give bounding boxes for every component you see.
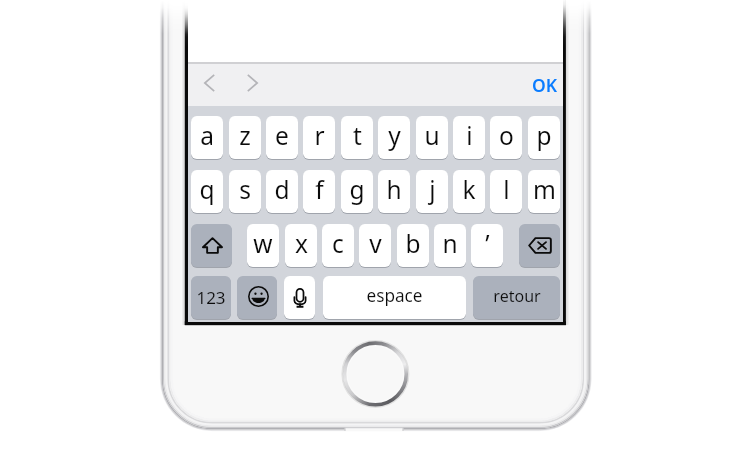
button[interactable]: z — [229, 116, 261, 159]
staticText: t — [353, 119, 362, 152]
button[interactable]: h — [378, 170, 410, 213]
staticText: g — [349, 173, 365, 206]
button[interactable]: r — [303, 116, 335, 159]
staticText: u — [424, 119, 440, 152]
staticText: j — [429, 173, 436, 206]
staticText: i — [466, 119, 473, 152]
staticText: m — [533, 173, 556, 206]
staticText: o — [499, 119, 514, 152]
staticText: e — [275, 119, 289, 152]
button[interactable]: Previous field — [193, 64, 225, 106]
button[interactable]: y — [378, 116, 410, 159]
button[interactable]: t — [341, 116, 373, 159]
button[interactable]: u — [416, 116, 448, 159]
staticText: a — [200, 119, 214, 152]
button[interactable]: v — [359, 224, 391, 267]
button[interactable]: espace — [323, 276, 466, 319]
button[interactable]: g — [341, 170, 373, 213]
staticText: s — [239, 173, 251, 206]
staticText: l — [503, 173, 510, 206]
button[interactable]: 123 — [191, 276, 231, 319]
staticText: r — [314, 119, 325, 152]
button[interactable]: d — [266, 170, 298, 213]
button[interactable]: OK — [532, 64, 558, 106]
button[interactable]: p — [528, 116, 560, 159]
button[interactable]: j — [416, 170, 448, 213]
staticText: k — [462, 173, 476, 206]
button[interactable]: k — [453, 170, 485, 213]
button[interactable]: ’ — [471, 224, 503, 267]
staticText: z — [239, 119, 251, 152]
staticText: p — [536, 119, 552, 152]
staticText: espace — [366, 284, 423, 307]
staticText: w — [253, 227, 273, 260]
button[interactable]: m — [528, 170, 560, 213]
staticText: d — [274, 173, 290, 206]
staticText: f — [315, 173, 324, 206]
button[interactable]: f — [303, 170, 335, 213]
button[interactable]: a — [191, 116, 223, 159]
button[interactable]: Emoji — [237, 276, 277, 319]
button[interactable]: o — [490, 116, 522, 159]
staticText: h — [386, 173, 402, 206]
staticText: q — [199, 173, 215, 206]
staticText: n — [442, 227, 458, 260]
button[interactable]: Shift — [191, 224, 232, 267]
staticText: y — [388, 119, 401, 152]
staticText: retour — [493, 285, 541, 307]
button[interactable]: q — [191, 170, 223, 213]
button[interactable]: Dictate — [284, 276, 315, 319]
staticText: x — [295, 227, 308, 260]
button[interactable]: retour — [473, 276, 560, 319]
staticText: c — [332, 227, 344, 260]
button[interactable]: l — [490, 170, 522, 213]
staticText: b — [405, 227, 421, 260]
button[interactable]: i — [453, 116, 485, 159]
staticText: OK — [532, 73, 558, 97]
staticText: 123 — [196, 286, 226, 309]
button[interactable]: x — [285, 224, 317, 267]
button[interactable]: w — [247, 224, 279, 267]
button[interactable]: Next field — [236, 64, 268, 106]
button[interactable]: b — [397, 224, 429, 267]
staticText: v — [369, 227, 382, 260]
button[interactable]: c — [322, 224, 354, 267]
button[interactable]: s — [229, 170, 261, 213]
button[interactable]: e — [266, 116, 298, 159]
button[interactable]: Backspace — [519, 224, 560, 267]
staticText: ’ — [485, 227, 490, 260]
button[interactable]: n — [434, 224, 466, 267]
